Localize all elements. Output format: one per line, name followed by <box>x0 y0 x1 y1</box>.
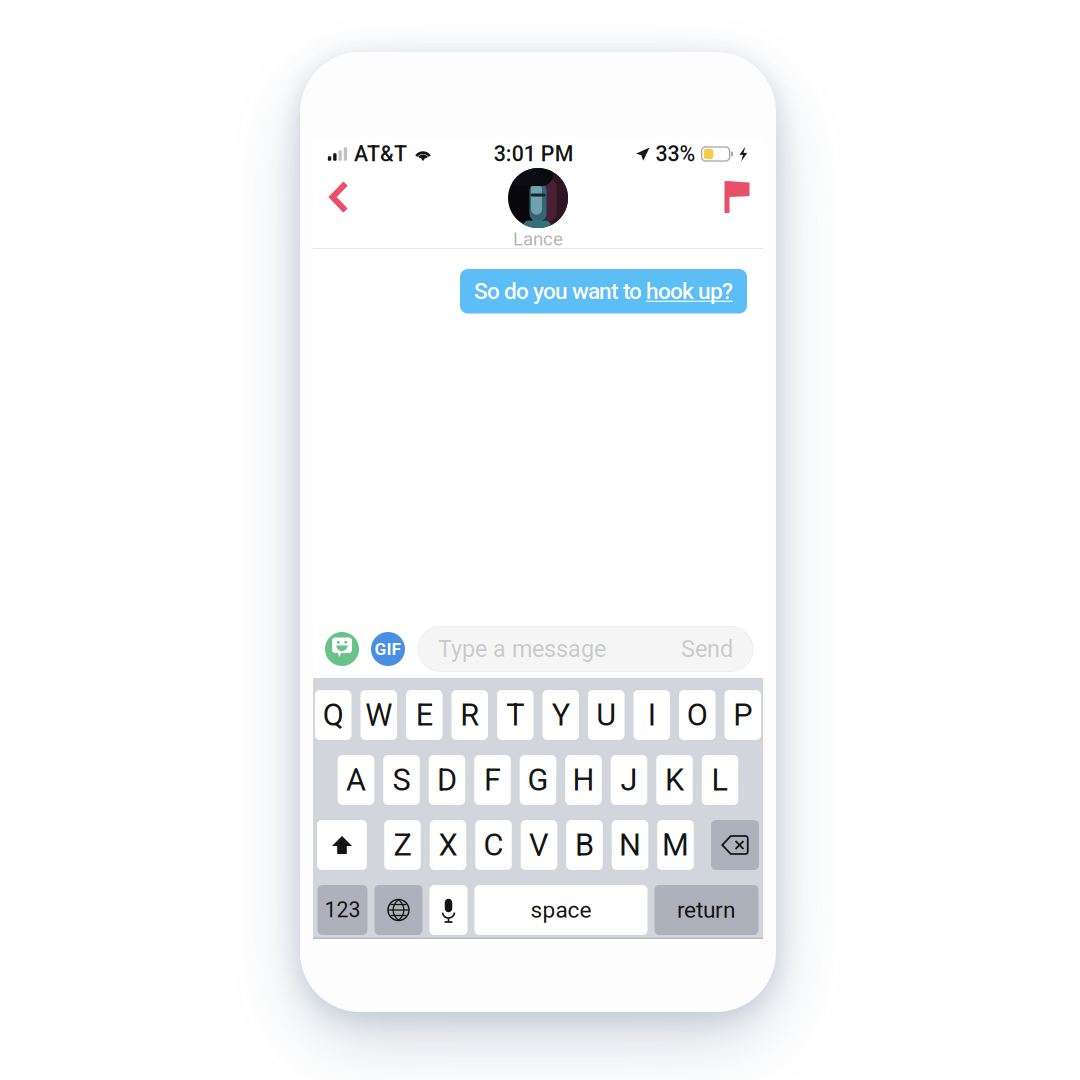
staticText: K <box>665 762 684 798</box>
staticText: Type a message <box>438 635 606 663</box>
staticText: R <box>460 697 479 733</box>
staticText: AT&T <box>354 141 407 166</box>
staticText: Q <box>323 697 344 733</box>
staticText: 3:01 PM <box>494 141 574 166</box>
staticText: C <box>483 827 503 863</box>
staticText: U <box>596 697 616 733</box>
staticText: H <box>572 762 594 798</box>
button[interactable]: G <box>520 755 556 805</box>
button[interactable]: space <box>474 885 647 935</box>
staticText: A <box>346 762 366 798</box>
staticText: 123 <box>324 897 360 922</box>
staticText: Z <box>393 827 411 863</box>
staticText: D <box>437 762 457 798</box>
button[interactable]: return <box>654 885 758 935</box>
button[interactable]: K <box>656 755 693 805</box>
staticText: O <box>687 697 708 733</box>
staticText: space <box>530 897 591 923</box>
button[interactable]: W <box>360 690 397 740</box>
staticText: So do you want to hook up? <box>474 278 733 305</box>
button[interactable]: M <box>657 820 694 870</box>
button[interactable]: H <box>565 755 602 805</box>
button[interactable]: U <box>588 690 624 740</box>
button[interactable]: Q <box>315 690 351 740</box>
button[interactable]: D <box>429 755 465 805</box>
button[interactable]: J <box>611 755 647 805</box>
button[interactable]: 123 <box>317 885 367 935</box>
staticText: F <box>484 762 501 798</box>
button[interactable]: X <box>430 820 466 870</box>
staticText: N <box>619 827 641 863</box>
staticText: return <box>677 897 736 923</box>
staticText: I <box>648 697 656 733</box>
button[interactable]: Report <box>714 171 760 223</box>
button[interactable]: Switch keyboard <box>374 885 422 935</box>
button[interactable]: P <box>724 690 761 740</box>
button[interactable]: Y <box>542 690 579 740</box>
button[interactable]: Back <box>316 171 362 223</box>
staticText: GIF <box>374 639 401 659</box>
button[interactable]: N <box>612 820 648 870</box>
staticText: B <box>575 827 594 863</box>
button[interactable]: R <box>451 690 488 740</box>
staticText: E <box>416 697 433 733</box>
button[interactable]: L <box>702 755 738 805</box>
button[interactable]: Delete <box>711 820 759 870</box>
button[interactable]: T <box>497 690 533 740</box>
staticText: P <box>733 697 752 733</box>
staticText: Send <box>681 635 733 663</box>
button[interactable]: Stickers <box>325 632 359 666</box>
staticText: V <box>529 827 549 863</box>
button[interactable]: Shift <box>317 820 367 870</box>
button[interactable]: GIF <box>371 632 405 666</box>
button[interactable]: C <box>475 820 512 870</box>
staticText: Lance <box>513 228 563 250</box>
staticText: S <box>392 762 410 798</box>
button[interactable]: Z <box>384 820 421 870</box>
button[interactable]: F <box>474 755 511 805</box>
button[interactable]: E <box>406 690 442 740</box>
staticText: X <box>438 827 457 863</box>
button[interactable]: A <box>338 755 374 805</box>
button[interactable]: V <box>521 820 557 870</box>
staticText: Y <box>552 697 570 733</box>
button[interactable]: Lance <box>508 168 568 250</box>
staticText: 33% <box>656 141 696 166</box>
staticText: J <box>620 762 637 798</box>
staticText: W <box>365 697 392 733</box>
staticText: M <box>662 827 689 863</box>
button[interactable]: Type a message <box>418 626 753 671</box>
button[interactable]: Dictate <box>429 885 467 935</box>
staticText: L <box>711 762 728 798</box>
staticText: T <box>506 697 524 733</box>
button[interactable]: S <box>383 755 420 805</box>
staticText: G <box>527 762 548 798</box>
button[interactable]: I <box>633 690 670 740</box>
button[interactable]: B <box>566 820 603 870</box>
button[interactable]: O <box>679 690 715 740</box>
